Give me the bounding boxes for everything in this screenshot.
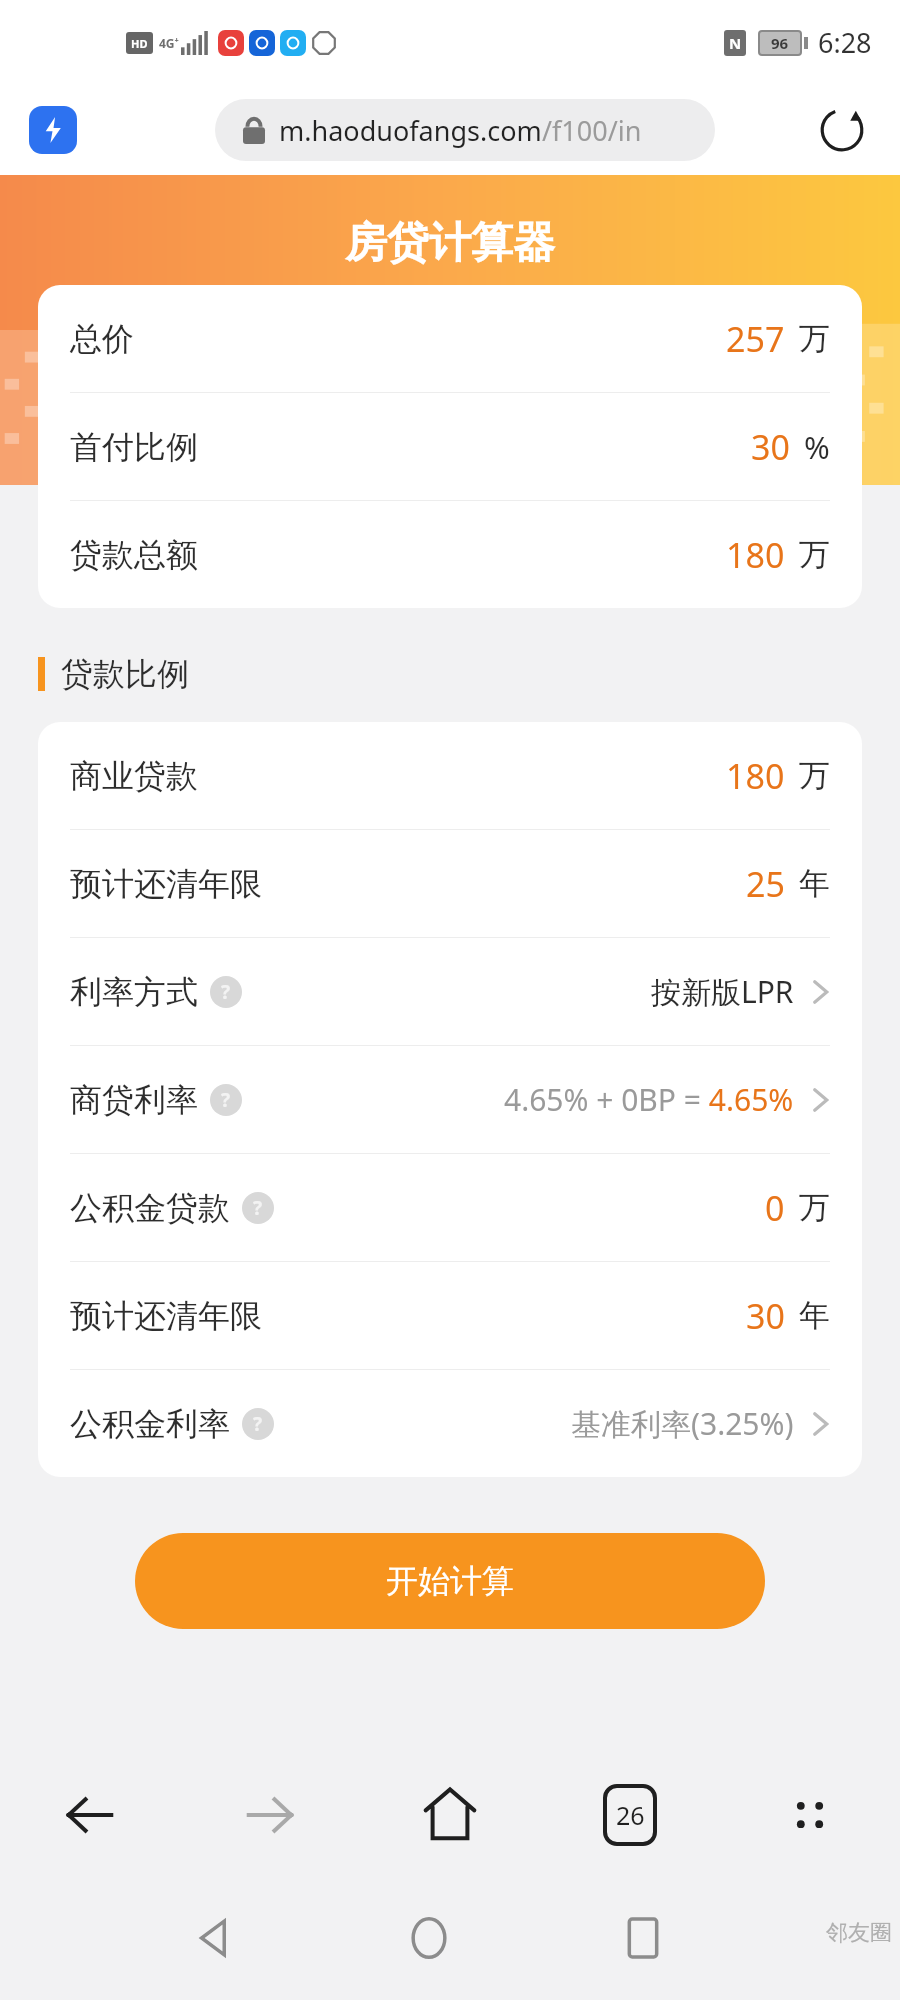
staticText: 商业贷款 xyxy=(70,756,198,796)
staticText: ? xyxy=(253,1195,263,1221)
staticText: 万 xyxy=(799,319,830,358)
staticText: 万 xyxy=(799,756,830,795)
button[interactable]: 商业贷款 xyxy=(70,722,830,829)
staticText: 年 xyxy=(799,864,830,903)
button[interactable]: 预计还清年限 xyxy=(70,1262,830,1369)
button[interactable]: Back xyxy=(108,1875,322,2000)
staticText: 30 xyxy=(751,424,790,470)
staticText: 预计还清年限 xyxy=(70,1296,262,1336)
staticText: 96 xyxy=(771,33,789,53)
button[interactable]: 开始计算 xyxy=(135,1533,765,1629)
staticText: 基准利率(3.25%) xyxy=(571,1403,794,1444)
button[interactable]: m.haoduofangs.com xyxy=(215,99,715,161)
staticText: 年 xyxy=(799,1296,830,1335)
staticText: 首付比例 xyxy=(70,427,198,467)
button[interactable]: Home xyxy=(322,1875,536,2000)
staticText: 30 xyxy=(746,1293,785,1339)
button[interactable]: 商贷利率 xyxy=(70,1046,830,1153)
button[interactable]: Forward xyxy=(180,1755,360,1875)
button[interactable]: Back xyxy=(0,1755,180,1875)
button[interactable]: 总价 xyxy=(70,285,830,392)
staticText: /f100/in xyxy=(542,112,642,149)
staticText: ? xyxy=(221,979,231,1005)
button[interactable]: Home xyxy=(360,1755,540,1875)
staticText: 25 xyxy=(746,861,785,907)
staticText: 房贷计算器 xyxy=(345,217,555,270)
button[interactable]: 预计还清年限 xyxy=(70,830,830,937)
staticText: 257 xyxy=(726,316,785,362)
button[interactable]: Browser xyxy=(26,103,80,157)
staticText: 开始计算 xyxy=(386,1561,514,1601)
button[interactable]: More xyxy=(720,1755,900,1875)
staticText: 利率方式 xyxy=(70,972,198,1012)
staticText: 180 xyxy=(726,753,785,799)
button[interactable]: 利率方式 xyxy=(70,938,830,1045)
staticText: 万 xyxy=(799,1188,830,1227)
staticText: HD xyxy=(131,36,148,51)
staticText: 公积金贷款 xyxy=(70,1188,230,1228)
staticText: 180 xyxy=(726,532,785,578)
staticText: 0 xyxy=(765,1185,785,1231)
staticText: 贷款比例 xyxy=(61,654,189,694)
button[interactable]: 公积金利率 xyxy=(70,1370,830,1477)
staticText: 4.65% + 0BP = 4.65% xyxy=(504,1079,794,1120)
staticText: ? xyxy=(253,1411,263,1437)
staticText: m.haoduofangs.com xyxy=(279,112,542,149)
staticText: ? xyxy=(221,1087,231,1113)
staticText: N xyxy=(729,33,742,53)
button[interactable]: Reload xyxy=(812,100,872,160)
staticText: 按新版LPR xyxy=(651,971,794,1012)
staticText: 4G⁺ xyxy=(159,35,179,51)
button[interactable]: Tabs xyxy=(540,1755,720,1875)
staticText: 贷款总额 xyxy=(70,535,198,575)
staticText: 邻友圈 xyxy=(826,1919,892,1947)
staticText: 预计还清年限 xyxy=(70,864,262,904)
staticText: 万 xyxy=(799,535,830,574)
button[interactable]: Recents xyxy=(536,1875,750,2000)
button[interactable]: 贷款总额 xyxy=(70,501,830,608)
button[interactable]: 首付比例 xyxy=(70,393,830,500)
button[interactable]: 公积金贷款 xyxy=(70,1154,830,1261)
staticText: % xyxy=(804,426,830,468)
staticText: 6:28 xyxy=(818,24,872,61)
staticText: 商贷利率 xyxy=(70,1080,198,1120)
staticText: 26 xyxy=(616,1798,645,1832)
staticText: 公积金利率 xyxy=(70,1404,230,1444)
staticText: 总价 xyxy=(70,319,134,359)
